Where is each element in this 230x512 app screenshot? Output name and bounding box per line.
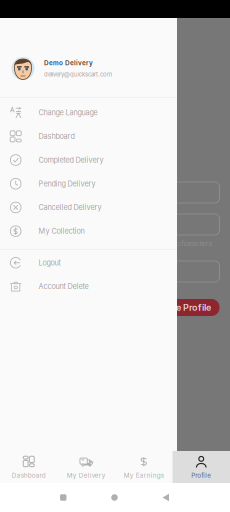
button[interactable]: Cancelled Delivery	[0, 196, 177, 219]
staticText: My Collection	[38, 227, 84, 236]
staticText: delivery@quickscart.com	[44, 71, 112, 78]
staticText: Demo Delivery	[44, 59, 93, 67]
button[interactable]: Home	[111, 494, 118, 501]
button[interactable]: Back	[162, 494, 169, 501]
staticText: My Earnings	[124, 471, 164, 479]
button[interactable]: Pending Delivery	[0, 172, 177, 196]
button[interactable]: Recent apps	[60, 494, 66, 501]
staticText: Account Delete	[38, 282, 88, 291]
staticText: Cancelled Delivery	[38, 203, 101, 212]
staticText: Password must be at least 6 characters	[83, 239, 212, 248]
button[interactable]: Logout	[0, 251, 177, 275]
button[interactable]: Completed Delivery	[0, 148, 177, 172]
staticText: Pending Delivery	[38, 179, 95, 188]
button[interactable]: My Earnings	[115, 451, 172, 483]
staticText: Dashboard	[12, 471, 46, 479]
staticText: Profile	[191, 471, 211, 479]
staticText: Change Language	[38, 108, 97, 117]
staticText: Update Profile	[149, 302, 211, 313]
button[interactable]: Dashboard	[0, 124, 177, 148]
staticText: Logout	[38, 258, 60, 267]
button[interactable]: My Delivery	[57, 451, 115, 483]
button[interactable]: My Collection	[0, 219, 177, 243]
button[interactable]: Account Delete	[0, 275, 177, 298]
button[interactable]: Dashboard	[0, 451, 57, 483]
staticText: My Delivery	[67, 471, 106, 479]
button[interactable]: Change Language	[0, 101, 177, 124]
button[interactable]: Profile	[172, 451, 230, 483]
staticText: Completed Delivery	[38, 156, 103, 164]
staticText: Dashboard	[38, 132, 74, 141]
